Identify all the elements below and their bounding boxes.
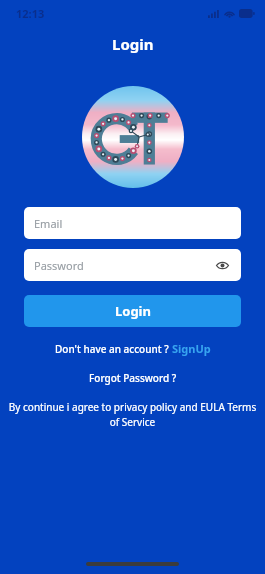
button[interactable]: SignUp [172, 341, 211, 356]
button[interactable]: Login [24, 295, 241, 327]
staticText: Login [115, 302, 151, 320]
staticText: Don't have an account ? [55, 342, 172, 356]
staticText: 12:13 [16, 6, 45, 21]
staticText: By continue i agree to privacy policy an… [8, 400, 257, 429]
button[interactable]: Forgot Password ? [81, 368, 185, 388]
staticText: Forgot Password ? [89, 371, 177, 385]
staticText: Email [34, 216, 63, 231]
staticText: SignUp [172, 341, 211, 356]
staticText: Password [34, 258, 84, 273]
button[interactable]: Email [24, 207, 241, 239]
button[interactable]: Password [24, 249, 241, 281]
button[interactable]: Show password [213, 256, 231, 274]
staticText: Login [112, 34, 154, 54]
